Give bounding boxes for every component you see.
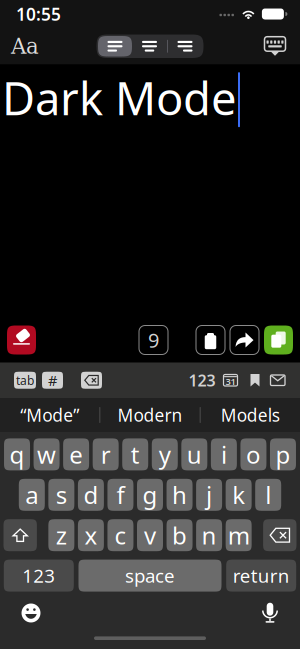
staticText: l	[265, 479, 271, 511]
staticText: t	[131, 438, 140, 470]
button[interactable]: tab	[14, 372, 36, 389]
button[interactable]: c	[107, 519, 133, 551]
staticText: h	[172, 479, 187, 511]
button[interactable]: Models	[201, 403, 300, 426]
staticText: Models	[221, 403, 280, 426]
staticText: Aa	[11, 34, 39, 59]
staticText: m	[228, 519, 250, 551]
button[interactable]: s	[48, 479, 74, 511]
staticText: Modern	[117, 403, 182, 426]
staticText: 31	[225, 375, 235, 388]
button[interactable]: space	[78, 560, 221, 592]
staticText: c	[114, 519, 126, 551]
button[interactable]: m	[226, 519, 252, 551]
button[interactable]: d	[78, 479, 104, 511]
button[interactable]: Copy	[264, 325, 293, 354]
button[interactable]: Erase	[7, 325, 36, 354]
button[interactable]: h	[167, 479, 193, 511]
button[interactable]: o	[240, 438, 266, 470]
button[interactable]: u	[181, 438, 207, 470]
staticText: v	[144, 519, 156, 551]
button[interactable]: Paste	[196, 325, 225, 354]
staticText: j	[206, 479, 212, 511]
staticText: y	[159, 438, 171, 470]
staticText: a	[25, 479, 38, 511]
staticText: 9	[148, 327, 159, 353]
button[interactable]: Align left	[98, 36, 132, 56]
button[interactable]: b	[167, 519, 193, 551]
button[interactable]: Shift	[3, 519, 37, 551]
staticText: “Mode”	[20, 403, 79, 426]
staticText: #	[48, 370, 57, 390]
button[interactable]: Mail	[270, 375, 285, 385]
button[interactable]: l	[255, 479, 281, 511]
button[interactable]: Hide keyboard	[252, 28, 298, 64]
button[interactable]: y	[152, 438, 178, 470]
staticText: s	[56, 479, 67, 511]
staticText: b	[172, 519, 187, 551]
staticText: q	[9, 438, 24, 470]
button[interactable]: Text format	[2, 28, 48, 64]
button[interactable]: 123	[4, 560, 74, 592]
button[interactable]: a	[19, 479, 45, 511]
staticText: u	[187, 438, 202, 470]
staticText: f	[116, 479, 124, 511]
button[interactable]: Clear tag	[81, 372, 102, 389]
button[interactable]: q	[4, 438, 30, 470]
button[interactable]: j	[196, 479, 222, 511]
button[interactable]: return	[226, 560, 296, 592]
button[interactable]: i	[211, 438, 237, 470]
button[interactable]: x	[78, 519, 104, 551]
button[interactable]: Date	[223, 374, 237, 386]
staticText: 123	[22, 563, 55, 588]
staticText: tab	[16, 372, 34, 388]
staticText: e	[69, 438, 83, 470]
button[interactable]: Bookmark	[250, 374, 259, 386]
button[interactable]: Page count	[139, 325, 168, 354]
button[interactable]: t	[122, 438, 148, 470]
button[interactable]: Align center	[132, 36, 167, 56]
button[interactable]: k	[226, 479, 252, 511]
staticText: z	[56, 519, 67, 551]
button[interactable]: p	[270, 438, 296, 470]
staticText: o	[246, 438, 261, 470]
staticText: Dark Mode	[2, 67, 237, 128]
staticText: 10:55	[16, 2, 61, 25]
staticText: r	[101, 438, 111, 470]
staticText: n	[202, 519, 217, 551]
button[interactable]: v	[137, 519, 163, 551]
staticText: p	[275, 438, 290, 470]
button[interactable]: z	[48, 519, 74, 551]
staticText: 123	[188, 370, 215, 391]
staticText: x	[84, 519, 97, 551]
staticText: return	[233, 563, 290, 588]
button[interactable]: r	[93, 438, 119, 470]
button[interactable]: Modern	[100, 403, 200, 426]
button[interactable]: Align right	[168, 36, 202, 56]
button[interactable]: e	[63, 438, 89, 470]
button[interactable]: #	[42, 372, 63, 389]
staticText: d	[83, 479, 98, 511]
button[interactable]: w	[34, 438, 60, 470]
staticText: space	[125, 563, 175, 588]
button[interactable]: Share	[230, 325, 259, 354]
button[interactable]: n	[196, 519, 222, 551]
button[interactable]: 123	[188, 370, 215, 391]
button[interactable]: f	[107, 479, 133, 511]
staticText: i	[221, 438, 227, 470]
staticText: w	[37, 438, 56, 470]
button[interactable]: Dictate	[249, 600, 291, 626]
staticText: g	[142, 479, 157, 511]
button[interactable]: g	[137, 479, 163, 511]
button[interactable]: Delete	[263, 519, 296, 551]
staticText: k	[232, 479, 245, 511]
button[interactable]: “Mode”	[0, 403, 99, 426]
button[interactable]: Emoji	[10, 600, 52, 626]
